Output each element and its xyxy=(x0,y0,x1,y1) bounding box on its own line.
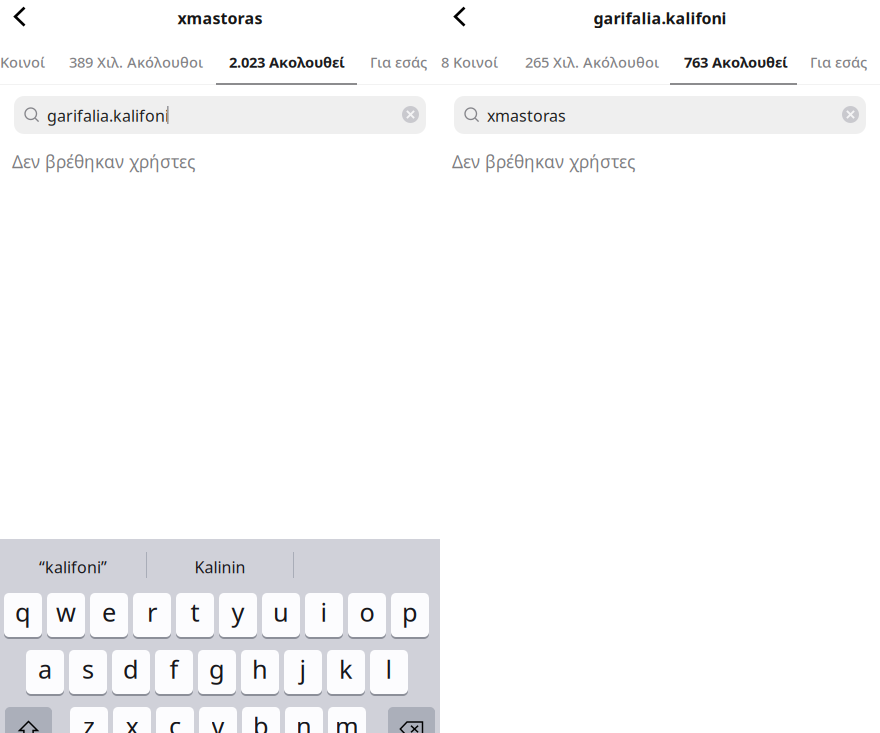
staticText: y xyxy=(231,595,244,629)
button[interactable]: a xyxy=(26,650,64,696)
button[interactable]: j xyxy=(284,650,322,696)
staticText: p xyxy=(402,595,418,629)
staticText: u xyxy=(273,595,289,629)
button[interactable]: “kalifoni” xyxy=(0,550,146,584)
button[interactable]: t xyxy=(176,593,214,639)
button[interactable]: Για εσάς xyxy=(370,45,427,79)
button[interactable]: m xyxy=(328,707,366,733)
button[interactable]: p xyxy=(391,593,429,639)
button[interactable]: g xyxy=(198,650,236,696)
button[interactable]: n xyxy=(285,707,323,733)
staticText: m xyxy=(335,709,359,733)
staticText: v xyxy=(211,709,224,733)
button[interactable]: garifalia.kalifoni xyxy=(14,96,426,134)
button[interactable]: d xyxy=(112,650,150,696)
button[interactable]: Για εσάς xyxy=(810,45,867,79)
button[interactable]: Clear search xyxy=(842,106,859,123)
staticText: Κοινοί xyxy=(0,52,45,72)
button[interactable]: i xyxy=(305,593,343,639)
button[interactable]: Κοινοί xyxy=(0,45,45,79)
button[interactable]: z xyxy=(70,707,108,733)
staticText: Δεν βρέθηκαν χρήστες xyxy=(452,150,635,173)
staticText: a xyxy=(38,652,52,686)
staticText: Δεν βρέθηκαν χρήστες xyxy=(12,150,195,173)
staticText: f xyxy=(169,652,178,686)
button[interactable]: b xyxy=(242,707,280,733)
button[interactable]: e xyxy=(90,593,128,639)
staticText: z xyxy=(83,709,95,733)
button[interactable]: q xyxy=(4,593,42,639)
staticText: garifalia.kalifoni xyxy=(593,7,726,29)
staticText: Kalinin xyxy=(194,556,245,578)
button[interactable]: Back xyxy=(443,0,477,35)
button[interactable]: k xyxy=(327,650,365,696)
button[interactable]: v xyxy=(199,707,237,733)
staticText: t xyxy=(190,595,199,629)
staticText: k xyxy=(339,652,353,686)
button[interactable]: l xyxy=(370,650,408,696)
staticText: w xyxy=(56,595,76,629)
button[interactable]: r xyxy=(133,593,171,639)
button[interactable]: 2.023 Ακολουθεί xyxy=(229,45,345,79)
button[interactable]: o xyxy=(348,593,386,639)
button[interactable]: Back xyxy=(3,0,37,35)
staticText: Για εσάς xyxy=(370,52,427,72)
staticText: xmastoras xyxy=(487,105,566,126)
button[interactable]: h xyxy=(241,650,279,696)
button[interactable]: 763 Ακολουθεί xyxy=(684,45,788,79)
staticText: c xyxy=(169,709,181,733)
staticText: j xyxy=(299,652,306,686)
staticText: Για εσάς xyxy=(810,52,867,72)
staticText: s xyxy=(82,652,94,686)
staticText: 2.023 Ακολουθεί xyxy=(229,52,345,72)
button[interactable]: 389 Χιλ. Ακόλουθοι xyxy=(69,45,203,79)
button[interactable]: s xyxy=(69,650,107,696)
staticText: 389 Χιλ. Ακόλουθοι xyxy=(69,52,203,72)
staticText: “kalifoni” xyxy=(39,556,107,578)
button[interactable]: x xyxy=(113,707,151,733)
button[interactable]: 265 Χιλ. Ακόλουθοι xyxy=(525,45,659,79)
button[interactable]: w xyxy=(47,593,85,639)
staticText: b xyxy=(253,709,269,733)
staticText: 8 Κοινοί xyxy=(441,52,498,72)
staticText: garifalia.kalifoni xyxy=(47,105,169,126)
button[interactable]: Shift xyxy=(5,707,52,733)
button[interactable]: 8 Κοινοί xyxy=(441,45,498,79)
button[interactable]: u xyxy=(262,593,300,639)
button[interactable]: c xyxy=(156,707,194,733)
staticText: xmastoras xyxy=(177,7,262,29)
staticText: 265 Χιλ. Ακόλουθοι xyxy=(525,52,659,72)
button[interactable]: Kalinin xyxy=(147,550,293,584)
button[interactable]: Delete xyxy=(388,707,435,733)
button[interactable]: xmastoras xyxy=(454,96,866,134)
staticText: e xyxy=(102,595,116,629)
staticText: 763 Ακολουθεί xyxy=(684,52,788,72)
staticText: d xyxy=(123,652,139,686)
staticText: h xyxy=(252,652,268,686)
staticText: x xyxy=(125,709,138,733)
staticText: o xyxy=(359,595,374,629)
staticText: i xyxy=(320,595,327,629)
button[interactable]: y xyxy=(219,593,257,639)
button[interactable]: f xyxy=(155,650,193,696)
staticText: r xyxy=(147,595,157,629)
staticText: q xyxy=(15,595,31,629)
button[interactable]: Clear search xyxy=(402,106,419,123)
staticText: n xyxy=(296,709,312,733)
staticText: g xyxy=(209,652,225,686)
staticText: l xyxy=(385,652,392,686)
